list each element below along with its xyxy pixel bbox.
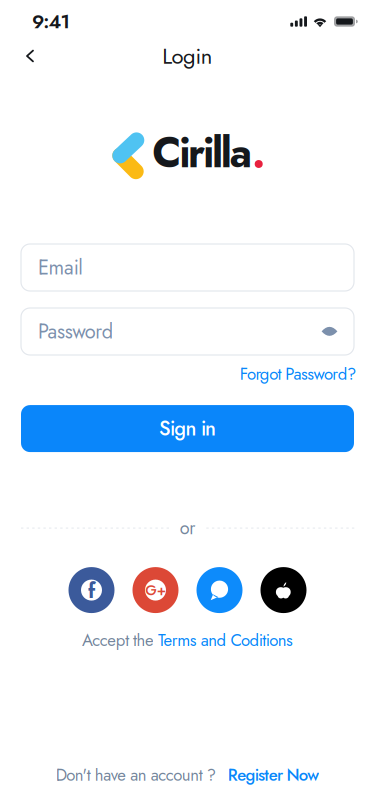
staticText: Email [38, 253, 83, 282]
button[interactable]: Sign in with Facebook [68, 567, 114, 613]
staticText: Login [162, 40, 213, 72]
button[interactable]: Show password [311, 317, 338, 346]
staticText: Accept the [82, 628, 154, 652]
staticText: Don't have an account ? [56, 763, 216, 787]
staticText: Terms and Coditions [158, 628, 293, 652]
staticText: f [88, 575, 95, 606]
button[interactable]: Sign in with Messenger [196, 567, 242, 613]
staticText: Cirilla [152, 123, 252, 183]
staticText: Password [38, 317, 113, 346]
staticText: Forgot Password? [240, 362, 356, 386]
button[interactable]: Forgot Password? [240, 357, 356, 391]
button[interactable]: Register Now [228, 763, 319, 787]
staticText: Sign in [159, 414, 216, 443]
staticText: or [180, 515, 195, 541]
button[interactable]: Sign in [21, 405, 354, 452]
staticText: G+ [145, 579, 166, 601]
staticText: 9:41 [32, 7, 70, 35]
button[interactable]: Terms and Coditions [158, 628, 293, 652]
staticText: Register Now [228, 763, 319, 787]
button[interactable]: Back [15, 39, 45, 73]
button[interactable]: Sign in with Apple [260, 567, 306, 613]
button[interactable]: Sign in with Google [132, 567, 178, 613]
